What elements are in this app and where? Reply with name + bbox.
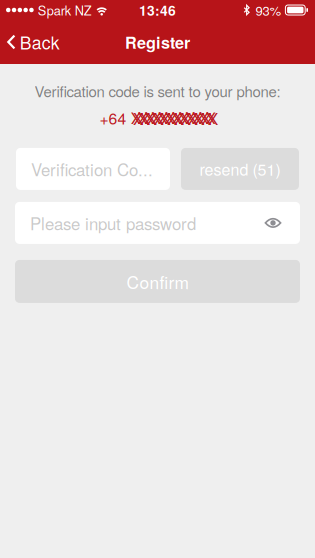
staticText: Verification code is sent to your phone:: [34, 80, 280, 101]
staticText: resend (51): [199, 157, 280, 180]
staticText: Register: [125, 30, 190, 54]
staticText: Verification Co...: [31, 157, 153, 181]
staticText: 13:46: [139, 0, 176, 20]
staticText: Back: [20, 29, 60, 55]
staticText: XXXXXXXXXXXX: [131, 106, 215, 129]
staticText: Please input password: [30, 211, 196, 235]
staticText: 93%: [255, 1, 281, 19]
staticText: XXXXXXXXXXXX: [133, 107, 218, 129]
staticText: Spark NZ: [38, 1, 92, 19]
button[interactable]: Show password: [258, 205, 288, 241]
button[interactable]: resend (51): [181, 148, 299, 190]
button[interactable]: Confirm: [15, 260, 300, 303]
staticText: +64: [100, 106, 127, 129]
button[interactable]: Back: [0, 20, 70, 64]
staticText: Confirm: [126, 269, 188, 294]
